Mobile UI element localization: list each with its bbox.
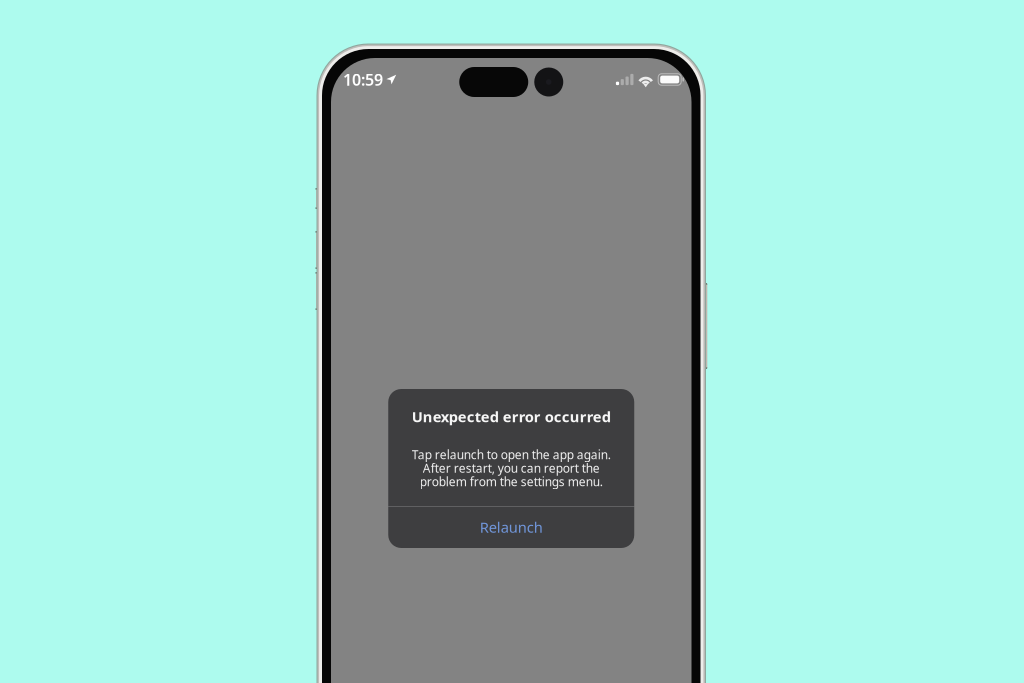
staticText: problem from the settings menu. bbox=[420, 473, 603, 489]
staticText: Tap relaunch to open the app again. bbox=[412, 446, 611, 462]
staticText: 10:59 bbox=[343, 69, 383, 90]
staticText: After restart, you can report the bbox=[423, 460, 600, 476]
staticText: Relaunch bbox=[480, 517, 543, 537]
button[interactable]: Relaunch bbox=[388, 506, 634, 548]
staticText: Unexpected error occurred bbox=[412, 407, 611, 426]
